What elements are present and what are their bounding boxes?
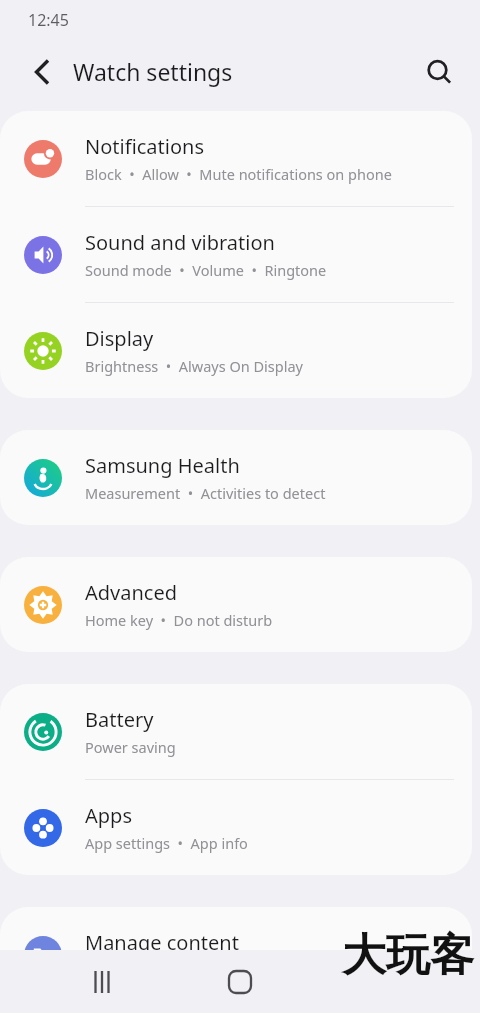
button[interactable]: Advanced — [0, 557, 472, 652]
staticText: Battery — [85, 706, 154, 733]
button[interactable]: Display — [0, 303, 472, 398]
staticText: Music • Images — [85, 960, 196, 980]
staticText: Display — [85, 325, 154, 352]
staticText: 大玩客 — [342, 928, 474, 983]
button[interactable]: Search — [415, 48, 463, 96]
staticText: Apps — [85, 802, 132, 829]
staticText: Watch settings — [73, 56, 233, 87]
button[interactable]: Battery — [0, 684, 472, 779]
button[interactable]: Samsung Health — [0, 430, 472, 525]
staticText: Brightness • Always On Display — [85, 356, 303, 376]
button[interactable]: Apps — [0, 780, 472, 875]
staticText: Measurement • Activities to detect — [85, 483, 326, 503]
staticText: Home key • Do not disturb — [85, 610, 273, 630]
button[interactable]: Notifications — [0, 111, 472, 206]
staticText: Advanced — [85, 579, 177, 606]
staticText: Sound mode • Volume • Ringtone — [85, 260, 327, 280]
button[interactable]: Home — [213, 955, 267, 1009]
button[interactable]: Sound and vibration — [0, 207, 472, 302]
staticText: Block • Allow • Mute notifications on ph… — [85, 164, 392, 184]
staticText: 12:45 — [28, 9, 69, 31]
button[interactable]: Back — [19, 49, 65, 95]
staticText: Samsung Health — [85, 452, 240, 479]
staticText: App settings • App info — [85, 833, 248, 853]
button[interactable]: Manage content — [0, 907, 472, 1002]
staticText: Power saving — [85, 737, 176, 757]
staticText: Notifications — [85, 133, 204, 160]
staticText: Manage content — [85, 929, 239, 956]
button[interactable]: Recents — [75, 955, 129, 1009]
staticText: Sound and vibration — [85, 229, 275, 256]
